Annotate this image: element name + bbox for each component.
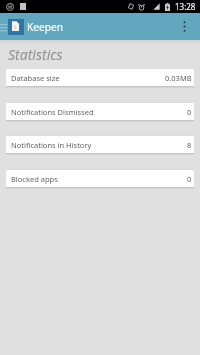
button[interactable]: Database size (6, 69, 194, 86)
staticText: 0 (187, 174, 192, 184)
staticText: Notifications in History (11, 140, 92, 150)
button[interactable]: More options (169, 13, 200, 40)
button[interactable]: Notifications in History (6, 136, 194, 153)
staticText: 13:28 (175, 1, 196, 12)
button[interactable]: Blocked apps (6, 170, 194, 187)
staticText: 8 (187, 140, 192, 150)
staticText: Keepen (27, 20, 64, 34)
staticText: Notifications Dismissed (11, 107, 94, 117)
staticText: 0.03MB (165, 73, 192, 83)
button[interactable]: Notifications Dismissed (6, 103, 194, 120)
staticText: Database size (11, 73, 60, 83)
staticText: 0 (187, 107, 192, 117)
staticText: Blocked apps (11, 174, 58, 184)
button[interactable]: Navigation drawer (0, 13, 7, 40)
staticText: Statistics (8, 45, 63, 64)
